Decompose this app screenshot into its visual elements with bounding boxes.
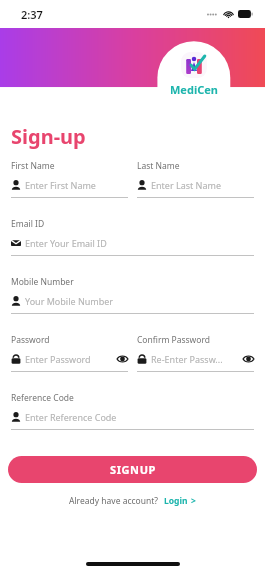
button[interactable]: Last Name [137,160,254,198]
staticText: Your Mobile Number [25,295,114,307]
staticText: Enter Your Email ID [25,237,107,249]
button[interactable]: Email ID [11,218,254,256]
button[interactable]: Show password [116,353,128,365]
staticText: First Name [11,160,55,172]
staticText: Enter First Name [25,179,96,191]
button[interactable]: First Name [11,160,128,198]
staticText: Enter Reference Code [25,411,117,423]
button[interactable]: Reference Code [11,392,254,430]
staticText: Already have account? [69,495,158,507]
button[interactable]: Confirm Password [137,334,254,372]
staticText: Sign-up [11,123,86,150]
staticText: SIGNUP [110,462,156,477]
staticText: Re-Enter Passw... [151,353,223,365]
button[interactable]: Password [11,334,128,372]
staticText: 2:37 [21,7,43,22]
button[interactable]: SIGNUP [8,456,257,483]
staticText: Last Name [137,160,180,172]
staticText: MediCen [170,82,218,97]
staticText: Password [11,334,50,346]
staticText: Email ID [11,218,45,230]
button[interactable]: Mobile Number [11,276,254,314]
button[interactable]: Login [164,495,196,507]
staticText: Enter Password [25,353,91,365]
staticText: Login [164,495,188,507]
staticText: > [191,495,196,507]
staticText: Reference Code [11,392,74,404]
staticText: Confirm Password [137,334,210,346]
button[interactable]: Show password [242,353,254,365]
staticText: Mobile Number [11,276,74,288]
staticText: Enter Last Name [151,179,221,191]
